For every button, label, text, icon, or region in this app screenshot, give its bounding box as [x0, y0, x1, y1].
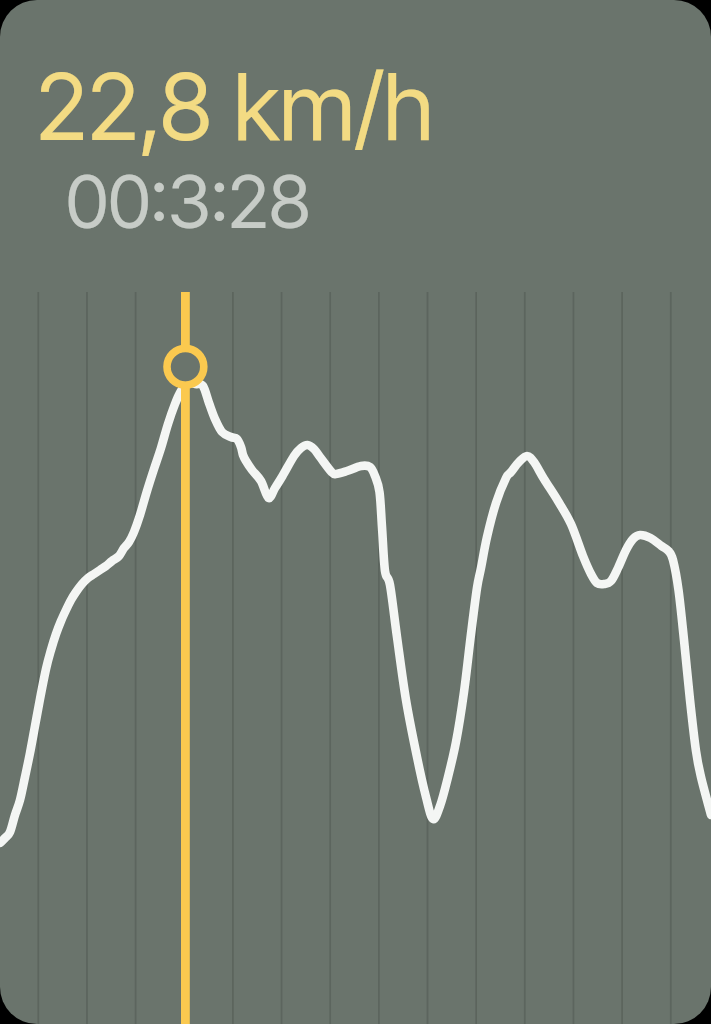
button[interactable]: Move time cursor [160, 341, 211, 392]
button[interactable]: 00:3:28 [66, 157, 311, 245]
button[interactable]: Speed chart, 22,8 km/h at 00:3:28 [0, 0, 711, 1024]
button[interactable]: 22,8 km/h [36, 51, 434, 162]
